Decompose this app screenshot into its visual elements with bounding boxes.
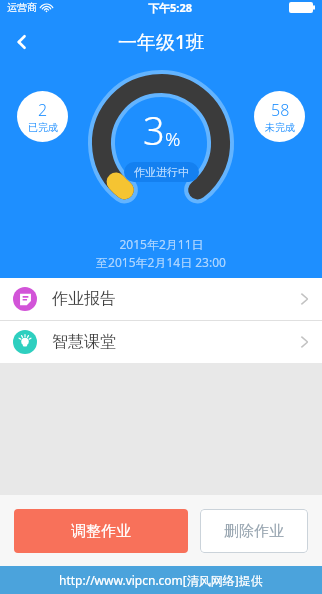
staticText: 运营商 bbox=[7, 1, 37, 14]
staticText: http://www.vipcn.com[清风网络]提供 bbox=[59, 572, 263, 588]
staticText: 一年级1班 bbox=[118, 29, 205, 55]
button[interactable]: 2 bbox=[17, 91, 68, 142]
staticText: 作业报告 bbox=[52, 289, 116, 309]
button[interactable]: 删除作业 bbox=[200, 509, 308, 553]
staticText: 2015年2月11日 bbox=[119, 236, 204, 252]
staticText: 至2015年2月14日 23:00 bbox=[96, 254, 226, 270]
staticText: 作业进行中 bbox=[134, 165, 189, 179]
button[interactable]: 58 bbox=[254, 91, 305, 142]
staticText: 调整作业 bbox=[71, 522, 131, 541]
staticText: 下午5:28 bbox=[148, 0, 192, 15]
staticText: % bbox=[165, 126, 181, 152]
staticText: 58 bbox=[271, 99, 290, 121]
staticText: 已完成 bbox=[28, 121, 58, 134]
button[interactable]: 调整作业 bbox=[14, 509, 188, 553]
staticText: 智慧课堂 bbox=[52, 332, 116, 352]
staticText: 3 bbox=[143, 104, 165, 156]
staticText: 未完成 bbox=[265, 121, 295, 134]
button[interactable]: Back bbox=[0, 20, 44, 64]
button[interactable]: 作业报告 bbox=[0, 278, 322, 320]
button[interactable]: 智慧课堂 bbox=[0, 321, 322, 363]
staticText: 2 bbox=[38, 99, 48, 121]
staticText: 删除作业 bbox=[224, 522, 284, 541]
